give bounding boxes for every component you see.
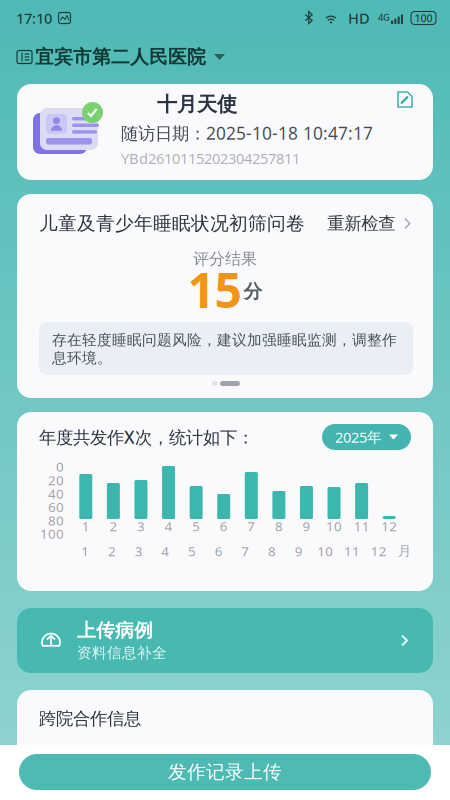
staticText: 发作记录上传 — [168, 760, 282, 783]
staticText: HD — [348, 8, 370, 28]
staticText: 2 — [108, 542, 116, 560]
staticText: 17:10 — [16, 8, 52, 28]
staticText: 4 — [161, 542, 169, 560]
staticText: 3 — [137, 517, 145, 535]
staticText: 资料信息补全 — [77, 644, 167, 662]
button[interactable]: 2025年 — [322, 424, 411, 450]
staticText: 1 — [81, 542, 89, 560]
button[interactable]: 十月天使 — [0, 84, 433, 180]
staticText: 5 — [188, 542, 196, 560]
button[interactable]: 重新检查 — [327, 213, 411, 234]
staticText: 5 — [192, 517, 200, 535]
staticText: 1 — [82, 517, 90, 535]
staticText: 12 — [381, 517, 397, 535]
staticText: 8 — [275, 517, 283, 535]
button[interactable]: 编辑 — [397, 91, 425, 115]
staticText: 9 — [295, 542, 303, 560]
staticText: 月 — [398, 543, 411, 559]
button[interactable]: 发作记录上传 — [19, 754, 431, 790]
staticText: 跨院合作信息 — [39, 708, 141, 729]
staticText: 2 — [109, 517, 117, 535]
staticText: 0 — [56, 458, 64, 475]
staticText: 十月天使 — [157, 92, 237, 117]
staticText: 7 — [241, 542, 249, 560]
staticText: 12 — [371, 542, 387, 560]
staticText: 为您匹配当地专家门诊，上周累计随访问诊 — [39, 745, 324, 763]
staticText: 3 — [135, 542, 143, 560]
staticText: 100 — [414, 11, 432, 25]
staticText: 9 — [302, 517, 310, 535]
staticText: 7 — [247, 517, 255, 535]
staticText: 年度共发作X次，统计如下： — [39, 425, 254, 448]
staticText: 4G — [378, 11, 390, 23]
staticText: 儿童及青少年睡眠状况初筛问卷 — [39, 212, 305, 235]
staticText: 40 — [48, 485, 64, 502]
staticText: 60 — [48, 498, 64, 516]
button[interactable]: 宜宾市第二人民医院 — [0, 36, 450, 78]
staticText: 存在轻度睡眠问题风险，建议加强睡眠监测，调整作息环境。 — [52, 331, 397, 367]
staticText: 随访日期：2025-10-18 10:47:17 — [121, 122, 373, 145]
staticText: 11 — [354, 517, 370, 535]
staticText: 评分结果 — [193, 249, 257, 269]
staticText: 10 — [317, 542, 333, 560]
staticText: 100 — [40, 525, 64, 542]
staticText: 8 — [268, 542, 276, 560]
staticText: 20 — [48, 471, 64, 489]
staticText: 10 — [326, 517, 342, 535]
staticText: 6 — [220, 517, 228, 535]
staticText: 宜宾市第二人民医院 — [35, 45, 206, 68]
staticText: 上传病例 — [77, 619, 153, 642]
staticText: 80 — [48, 511, 64, 529]
staticText: 15 — [187, 258, 241, 321]
button[interactable]: 上传病例 — [0, 608, 433, 673]
staticText: 11 — [344, 542, 360, 560]
staticText: 4 — [164, 517, 172, 535]
staticText: 2025年 — [335, 427, 382, 447]
staticText: 分 — [243, 280, 262, 303]
staticText: 重新检查 — [327, 213, 395, 234]
staticText: YBd2610115202304257811 — [121, 149, 300, 168]
staticText: 6 — [215, 542, 223, 560]
